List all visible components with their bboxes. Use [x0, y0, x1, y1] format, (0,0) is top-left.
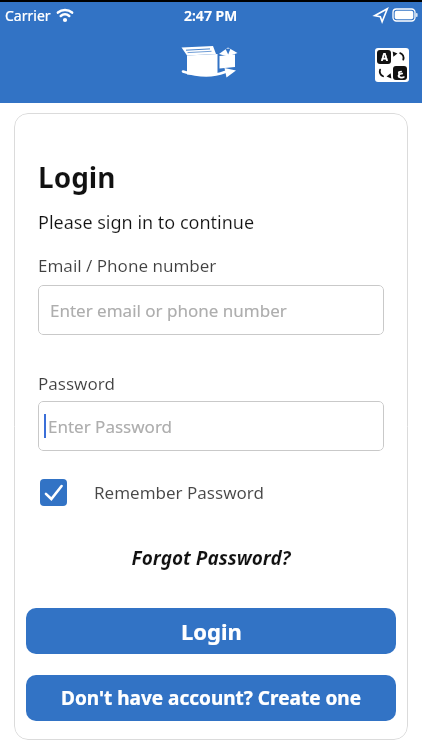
staticText: Please sign in to continue	[38, 210, 255, 235]
staticText: Login	[181, 616, 242, 646]
staticText: Enter Password	[48, 415, 173, 438]
staticText: Email / Phone number	[38, 254, 217, 277]
button[interactable]: Enter email or phone number	[38, 285, 384, 335]
staticText: Enter email or phone number	[50, 299, 287, 322]
staticText: ع	[397, 67, 404, 79]
staticText: 2:47 PM	[184, 6, 238, 25]
staticText: A	[381, 50, 388, 64]
button[interactable]: Login	[26, 608, 396, 654]
button[interactable]: Don't have account? Create one	[26, 675, 396, 721]
button[interactable]: A	[375, 48, 409, 82]
staticText: Remember Password	[94, 481, 264, 504]
button[interactable]: Enter Password	[38, 401, 384, 451]
button[interactable]: Forgot Password?	[38, 545, 384, 571]
staticText: Carrier	[5, 6, 51, 25]
staticText: Don't have account? Create one	[61, 685, 361, 711]
button[interactable]: Remember Password	[38, 479, 264, 506]
staticText: Password	[38, 372, 115, 395]
staticText: Login	[38, 158, 116, 196]
